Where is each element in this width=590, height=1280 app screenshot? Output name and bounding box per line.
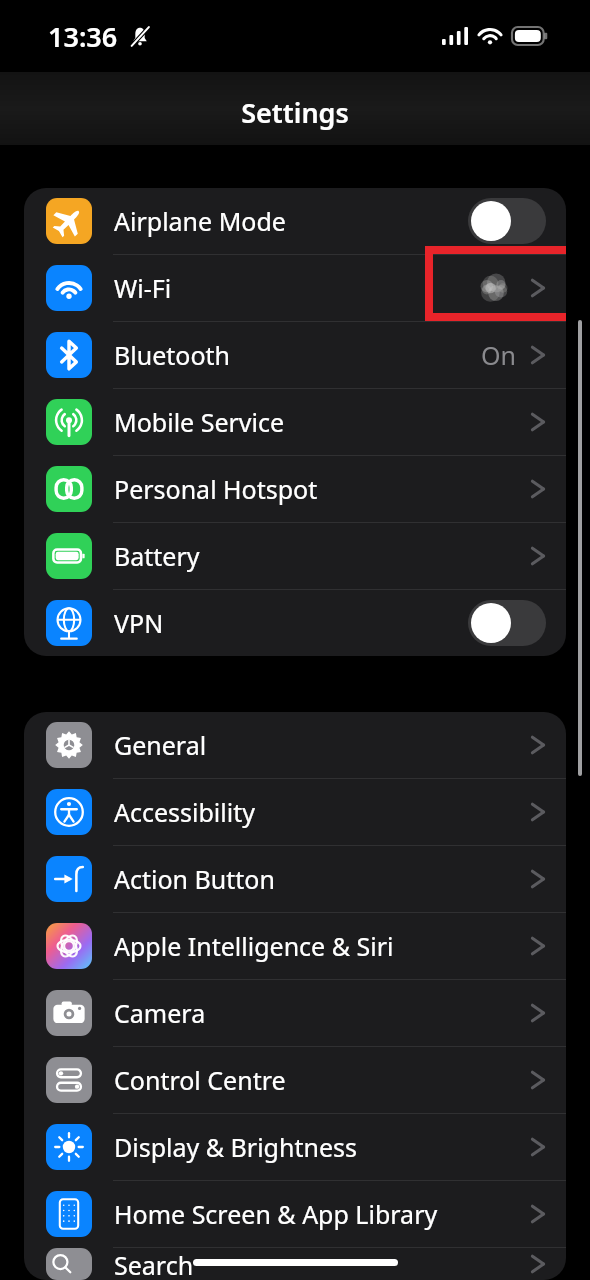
- button[interactable]: Personal Hotspot: [24, 456, 566, 522]
- staticText: On: [481, 338, 516, 372]
- staticText: Settings: [241, 94, 349, 131]
- button[interactable]: Airplane Mode: [24, 188, 566, 254]
- staticText: Apple Intelligence & Siri: [114, 929, 394, 963]
- button[interactable]: Mobile Service: [24, 389, 566, 455]
- button[interactable]: Airplane Mode toggle: [468, 198, 546, 244]
- button[interactable]: Apple Intelligence & Siri: [24, 913, 566, 979]
- staticText: Battery: [114, 539, 200, 573]
- staticText: Action Button: [114, 862, 275, 896]
- staticText: Home Screen & App Library: [114, 1197, 438, 1231]
- button[interactable]: VPN toggle: [468, 600, 546, 646]
- button[interactable]: Accessibility: [24, 779, 566, 845]
- staticText: VPN: [114, 606, 164, 640]
- button[interactable]: Search: [24, 1248, 566, 1280]
- button[interactable]: Wi-Fi: [24, 255, 566, 321]
- button[interactable]: VPN: [24, 590, 566, 656]
- button[interactable]: Bluetooth: [24, 322, 566, 388]
- staticText: Bluetooth: [114, 338, 231, 372]
- staticText: Mobile Service: [114, 405, 285, 439]
- staticText: Personal Hotspot: [114, 472, 318, 506]
- button[interactable]: Control Centre: [24, 1047, 566, 1113]
- staticText: Control Centre: [114, 1063, 286, 1097]
- button[interactable]: General: [24, 712, 566, 778]
- staticText: General: [114, 728, 207, 762]
- staticText: Search: [114, 1248, 194, 1280]
- staticText: Display & Brightness: [114, 1130, 357, 1164]
- staticText: 13:36: [48, 18, 118, 55]
- button[interactable]: Display & Brightness: [24, 1114, 566, 1180]
- staticText: Camera: [114, 996, 206, 1030]
- staticText: Wi-Fi: [114, 271, 172, 305]
- staticText: Airplane Mode: [114, 204, 286, 238]
- staticText: Accessibility: [114, 795, 255, 829]
- button[interactable]: Action Button: [24, 846, 566, 912]
- button[interactable]: Home Screen & App Library: [24, 1181, 566, 1247]
- button[interactable]: Battery: [24, 523, 566, 589]
- button[interactable]: Camera: [24, 980, 566, 1046]
